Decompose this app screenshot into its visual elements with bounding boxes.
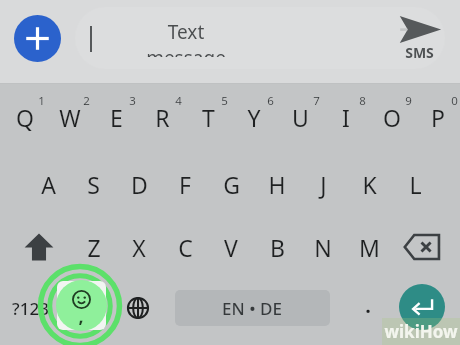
button[interactable]: I (323, 88, 369, 146)
button[interactable]: Q (2, 88, 48, 146)
button[interactable]: V (208, 218, 254, 276)
button[interactable]: Emoji (56, 280, 107, 331)
staticText: W (59, 102, 81, 133)
button[interactable]: L (392, 155, 438, 213)
staticText: . (365, 292, 371, 319)
staticText: U (292, 102, 309, 133)
staticText: D (131, 169, 148, 200)
staticText: O (383, 102, 401, 133)
button[interactable]: Send SMS (390, 7, 445, 69)
staticText: L (409, 169, 422, 200)
button[interactable]: T (185, 88, 231, 146)
staticText: F (179, 169, 191, 200)
button[interactable]: M (346, 218, 392, 276)
staticText: M (359, 232, 380, 263)
staticText: X (132, 232, 146, 263)
button[interactable]: E (93, 88, 139, 146)
button[interactable]: C (162, 218, 208, 276)
staticText: 3 (129, 93, 136, 109)
button[interactable]: X (116, 218, 162, 276)
staticText: S (87, 169, 100, 200)
button[interactable]: K (346, 155, 392, 213)
staticText: P (431, 102, 445, 133)
button[interactable]: Add attachment (14, 15, 61, 62)
staticText: A (41, 169, 56, 200)
staticText: 4 (175, 93, 182, 109)
staticText: H (268, 169, 286, 200)
button[interactable]: S (70, 155, 116, 213)
button[interactable]: Enter (399, 284, 445, 330)
button[interactable]: H (254, 155, 300, 213)
button[interactable]: U (277, 88, 323, 146)
staticText: 2 (83, 93, 90, 109)
staticText: K (362, 169, 377, 200)
button[interactable] (348, 288, 390, 330)
staticText: 9 (405, 93, 412, 109)
staticText: ?123 (12, 297, 49, 320)
staticText: T (202, 102, 215, 133)
staticText: R (155, 102, 170, 133)
staticText: G (223, 169, 240, 200)
button[interactable]: O (369, 88, 415, 146)
staticText: Y (247, 102, 261, 133)
staticText: 7 (313, 93, 320, 109)
staticText: V (224, 232, 238, 263)
button[interactable]: A (25, 155, 71, 213)
staticText: I (342, 102, 350, 133)
staticText: 0 (451, 93, 458, 109)
staticText: 1 (38, 93, 45, 109)
staticText: wikiHow (384, 320, 458, 343)
button[interactable]: G (208, 155, 254, 213)
button[interactable]: W (47, 88, 93, 146)
staticText: 6 (267, 93, 274, 109)
button[interactable]: D (116, 155, 162, 213)
button[interactable] (75, 7, 445, 69)
button[interactable] (175, 290, 330, 326)
button[interactable]: R (139, 88, 185, 146)
button[interactable]: B (254, 218, 300, 276)
staticText: E (110, 102, 123, 133)
button[interactable]: F (162, 155, 208, 213)
staticText: J (320, 169, 327, 200)
button[interactable]: P (415, 88, 460, 146)
button[interactable]: J (300, 155, 346, 213)
button[interactable]: Backspace (392, 222, 452, 272)
button[interactable]: Change language (116, 288, 160, 330)
staticText: Z (87, 232, 101, 263)
button[interactable]: Y (231, 88, 277, 146)
staticText: 8 (359, 93, 366, 109)
staticText: Q (16, 102, 34, 133)
staticText: SMS (405, 43, 434, 62)
staticText: B (270, 232, 285, 263)
button[interactable]: Z (71, 218, 117, 276)
staticText: EN • DE (222, 297, 282, 320)
button[interactable]: Shift (13, 222, 73, 272)
staticText: , (78, 304, 84, 329)
button[interactable]: N (300, 218, 346, 276)
staticText: N (314, 232, 332, 263)
button[interactable] (8, 288, 56, 330)
staticText: C (178, 232, 193, 263)
staticText: 5 (221, 93, 228, 109)
staticText: Text message (126, 19, 246, 57)
